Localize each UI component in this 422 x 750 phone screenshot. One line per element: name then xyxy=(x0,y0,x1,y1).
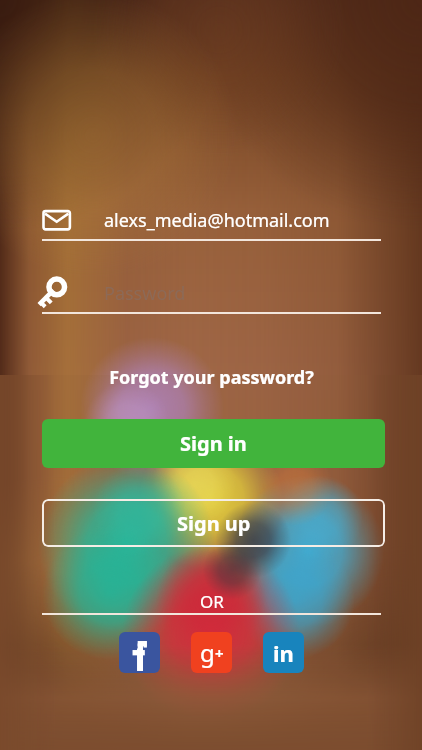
button[interactable]: Sign in with Google Plus xyxy=(191,632,232,673)
staticText: + xyxy=(215,643,224,663)
button[interactable]: Sign in with Facebook xyxy=(119,632,160,673)
button[interactable]: Password xyxy=(42,273,381,313)
button[interactable]: Forgot your password? xyxy=(42,360,381,394)
staticText: alexs_media@hotmail.com xyxy=(104,208,330,233)
button[interactable]: alexs_media@hotmail.com xyxy=(42,200,381,240)
button[interactable]: Sign up xyxy=(42,499,385,547)
button[interactable]: Sign in with LinkedIn xyxy=(263,632,304,673)
staticText: Password xyxy=(104,281,186,306)
button[interactable]: Sign in xyxy=(42,419,385,468)
staticText: g xyxy=(200,636,215,669)
staticText: Sign up xyxy=(177,510,251,537)
staticText: Sign in xyxy=(180,430,247,457)
staticText: in xyxy=(273,638,294,668)
staticText: OR xyxy=(200,590,224,613)
staticText: Forgot your password? xyxy=(109,365,314,390)
